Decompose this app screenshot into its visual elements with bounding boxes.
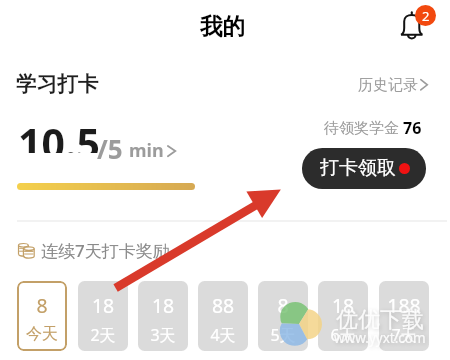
staticText: 18	[78, 292, 128, 318]
staticText: 76	[403, 117, 422, 139]
staticText: 10.5	[18, 115, 100, 153]
staticText: 连续7天打卡奖励	[41, 239, 170, 262]
staticText: 学习打卡	[16, 71, 99, 97]
staticText: 2	[422, 7, 430, 25]
button[interactable]: 18	[318, 281, 368, 351]
button[interactable]: 10.5	[16, 124, 180, 162]
button[interactable]: 18	[138, 281, 188, 351]
staticText: 7天	[379, 324, 429, 346]
staticText: 188	[379, 292, 429, 318]
button[interactable]: 打卡领取	[302, 148, 426, 189]
staticText: 6天	[318, 324, 368, 346]
staticText: 18	[138, 292, 188, 318]
staticText: 88	[198, 292, 248, 318]
staticText: 历史记录	[358, 76, 418, 95]
staticText: 我的	[200, 12, 245, 40]
button[interactable]: Notifications	[394, 4, 436, 44]
staticText: 今天	[17, 324, 67, 344]
staticText: min	[129, 138, 164, 163]
button[interactable]: 188	[379, 281, 429, 351]
staticText: /5	[97, 131, 123, 166]
button[interactable]: 8	[17, 281, 67, 351]
staticText: 4天	[198, 324, 248, 346]
staticText: 待领奖学金	[324, 119, 399, 138]
staticText: 8	[17, 292, 67, 318]
staticText: 3天	[138, 324, 188, 346]
button[interactable]: 8	[258, 281, 308, 351]
button[interactable]: 88	[198, 281, 248, 351]
staticText: 优优下载	[336, 306, 424, 334]
button[interactable]: 18	[78, 281, 128, 351]
staticText: 2天	[78, 324, 128, 346]
staticText: 打卡领取	[320, 156, 396, 180]
staticText: 5天	[258, 324, 308, 346]
staticText: www.yyxt.com	[334, 329, 426, 347]
staticText: 18	[318, 292, 368, 318]
staticText: 8	[258, 292, 308, 318]
button[interactable]: 历史记录	[354, 70, 432, 96]
